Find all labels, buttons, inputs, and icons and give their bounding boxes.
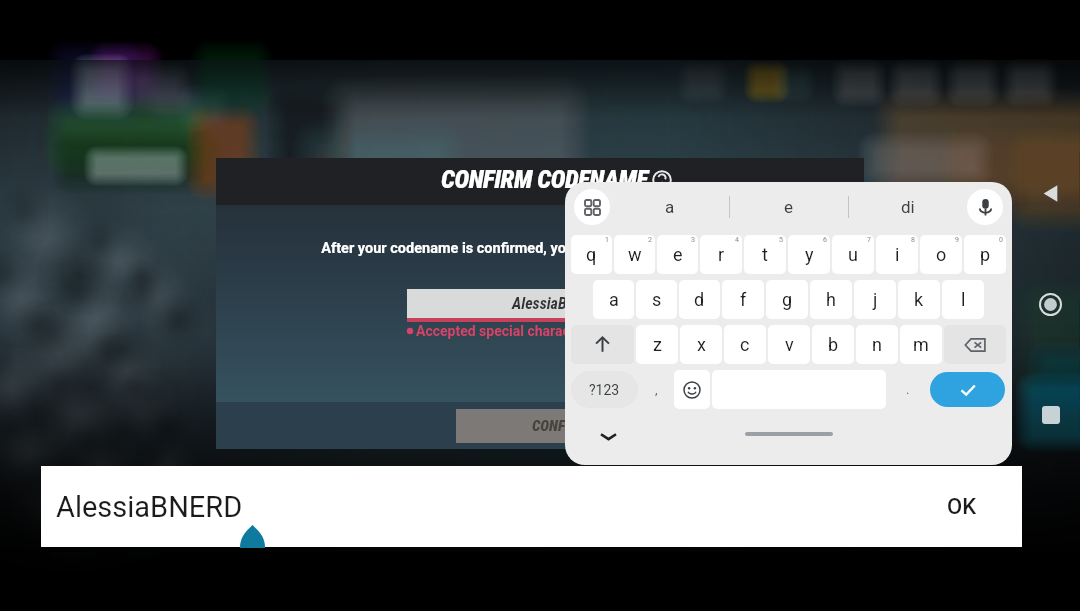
button[interactable]: m [900,325,942,364]
staticText: x [697,334,706,355]
button[interactable]: u [832,235,874,274]
button[interactable]: k [898,280,940,319]
button[interactable]: b [812,325,854,364]
button[interactable]: Home [1034,288,1066,320]
staticText: z [653,334,662,355]
staticText: 9 [955,236,959,244]
button[interactable]: y [788,235,830,274]
button[interactable]: p [964,235,1006,274]
staticText: AlessiaBNERD [56,490,243,524]
button[interactable]: s [636,280,677,319]
staticText: 2 [648,236,652,244]
button[interactable]: z [636,325,678,364]
button[interactable]: Emoji [674,370,710,409]
staticText: i [895,244,900,265]
button[interactable]: t [744,235,786,274]
staticText: k [914,289,924,310]
staticText: 8 [911,236,915,244]
button[interactable]: r [700,235,742,274]
staticText: h [826,289,836,310]
staticText: v [785,334,794,355]
button[interactable]: w [614,235,655,274]
staticText: 0 [999,236,1003,244]
staticText: a [609,289,619,310]
button[interactable]: e [657,235,698,274]
staticText: b [828,334,839,355]
staticText: e [673,244,683,265]
button[interactable]: x [680,325,722,364]
button[interactable]: , [639,367,673,412]
button[interactable]: q [571,235,612,274]
button[interactable]: v [768,325,810,364]
staticText: ?123 [589,382,620,398]
staticText: CONFIRM [532,417,589,435]
staticText: g [782,289,793,310]
staticText: di [901,197,915,217]
staticText: After your codename is confirmed, you wi… [321,240,760,257]
button[interactable]: Shift [571,325,634,364]
staticText: m [913,334,929,355]
button[interactable]: n [856,325,898,364]
staticText: 4 [735,236,739,244]
button[interactable]: Hide keyboard [593,412,623,460]
staticText: 3 [691,236,695,244]
button[interactable]: f [722,280,764,319]
staticText: q [586,244,597,265]
button[interactable]: c [724,325,766,364]
staticText: u [848,244,858,265]
staticText: o [936,244,947,265]
staticText: 7 [867,236,871,244]
button[interactable]: j [854,280,896,319]
staticText: c [740,334,750,355]
button[interactable]: a [610,182,729,232]
button[interactable]: Backspace [944,325,1006,364]
button[interactable]: i [876,235,918,274]
staticText: 6 [823,236,827,244]
staticText: n [872,334,882,355]
staticText: l [961,289,966,310]
staticText: OK [947,494,977,520]
staticText: r [718,244,725,265]
staticText: a [665,197,675,217]
staticText: j [873,289,878,310]
staticText: e [784,197,794,217]
staticText: . [906,382,910,397]
button[interactable]: d [679,280,720,319]
button[interactable]: . [887,367,928,412]
staticText: 1 [605,236,609,244]
button[interactable]: ?123 [571,371,638,408]
staticText: t [762,244,768,265]
button[interactable]: h [810,280,852,319]
staticText: 5 [779,236,783,244]
staticText: y [805,244,814,265]
button[interactable]: AlessiaBNERD [41,466,1022,547]
staticText: , [655,382,658,397]
button[interactable]: Apps [574,189,610,225]
button[interactable]: l [942,280,984,319]
button[interactable]: di [848,182,967,232]
staticText: d [694,289,705,310]
button[interactable]: Voice input [967,189,1003,225]
button[interactable]: Back [1034,177,1066,209]
staticText: Accepted special characters: - _ . [416,323,625,339]
button[interactable]: a [593,280,634,319]
button[interactable]: AlessiaBNERD [407,289,707,318]
staticText: w [628,244,642,265]
button[interactable]: o [920,235,962,274]
staticText: CONFIRM CODENAME [441,165,648,194]
staticText: f [740,289,747,310]
staticText: AlessiaBNERD [512,294,602,313]
button[interactable]: Recents [1036,400,1066,430]
button[interactable]: g [766,280,808,319]
button[interactable]: Enter [930,372,1005,407]
staticText: p [980,244,991,265]
button[interactable]: e [729,182,848,232]
staticText: s [652,289,662,310]
button[interactable]: CONFIRM [456,409,664,443]
